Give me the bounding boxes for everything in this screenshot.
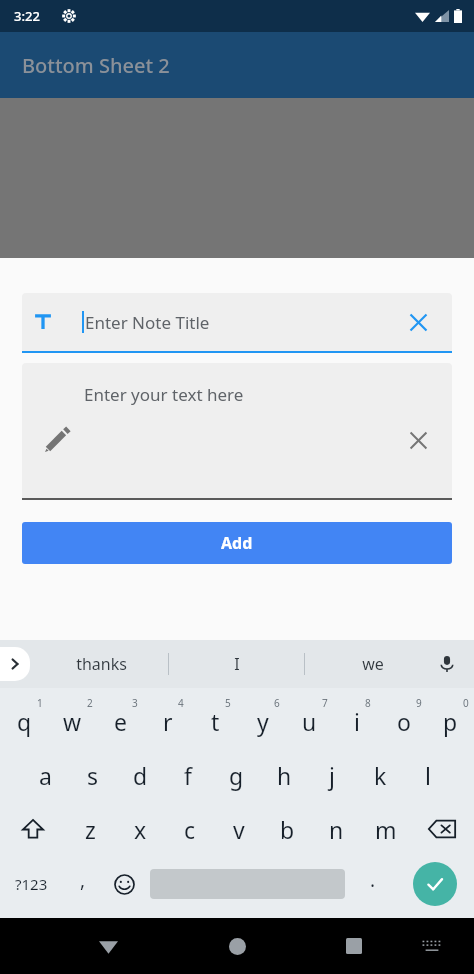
staticText: b <box>280 814 295 845</box>
button[interactable]: p <box>427 694 474 748</box>
button[interactable]: ?123 <box>0 856 63 912</box>
button[interactable]: j <box>308 748 356 802</box>
button[interactable]: v <box>214 802 263 856</box>
button[interactable]: f <box>164 748 212 802</box>
staticText: p <box>443 706 458 737</box>
button[interactable]: k <box>356 748 404 802</box>
staticText: r <box>163 706 173 737</box>
staticText: Add <box>221 532 253 554</box>
button[interactable]: r <box>144 694 192 748</box>
staticText: l <box>425 760 431 791</box>
staticText: 6 <box>274 696 280 710</box>
button[interactable]: b <box>263 802 312 856</box>
button[interactable]: q <box>0 694 48 748</box>
staticText: thanks <box>76 653 127 675</box>
staticText: c <box>184 814 196 845</box>
staticText: Enter your text here <box>84 383 244 406</box>
button[interactable]: Enter Note Title <box>22 293 452 353</box>
button[interactable]: n <box>312 802 361 856</box>
button[interactable]: o <box>380 694 427 748</box>
staticText: z <box>85 814 96 845</box>
staticText: 7 <box>322 696 328 710</box>
button[interactable]: i <box>333 694 380 748</box>
button[interactable]: s <box>69 748 116 802</box>
staticText: Enter Note Title <box>85 311 210 334</box>
button[interactable]: , <box>63 856 102 912</box>
staticText: g <box>229 760 244 791</box>
button[interactable]: x <box>115 802 165 856</box>
button[interactable]: Clear text <box>403 425 433 455</box>
staticText: . <box>370 867 376 893</box>
button[interactable]: Enter your text here <box>22 363 452 500</box>
button[interactable]: y <box>239 694 286 748</box>
button[interactable]: c <box>165 802 214 856</box>
staticText: a <box>39 760 52 791</box>
button[interactable]: w <box>48 694 96 748</box>
button[interactable]: . <box>349 856 396 912</box>
staticText: I <box>234 653 240 675</box>
staticText: ?123 <box>15 874 48 894</box>
staticText: y <box>257 706 269 737</box>
button[interactable]: a <box>22 748 69 802</box>
button[interactable]: z <box>65 802 115 856</box>
button[interactable]: t <box>192 694 239 748</box>
button[interactable]: Enter <box>413 862 457 906</box>
staticText: 9 <box>416 696 422 710</box>
button[interactable]: g <box>212 748 260 802</box>
button[interactable]: Emoji <box>102 856 146 912</box>
staticText: i <box>354 706 360 737</box>
button[interactable]: u <box>286 694 333 748</box>
button[interactable]: thanks <box>34 640 168 688</box>
button[interactable]: Backspace <box>410 802 474 856</box>
staticText: x <box>134 814 147 845</box>
staticText: Bottom Sheet 2 <box>22 52 170 79</box>
staticText: s <box>87 760 99 791</box>
staticText: u <box>302 706 317 737</box>
staticText: 0 <box>463 696 469 710</box>
staticText: o <box>397 706 411 737</box>
staticText: j <box>329 760 335 791</box>
button[interactable]: More suggestions <box>0 647 30 681</box>
button[interactable]: we <box>305 640 440 688</box>
staticText: m <box>375 814 397 845</box>
staticText: 2 <box>87 696 93 710</box>
button[interactable]: Add <box>22 522 452 564</box>
button[interactable]: h <box>260 748 308 802</box>
staticText: 8 <box>365 696 371 710</box>
staticText: 1 <box>37 696 43 710</box>
button[interactable]: m <box>361 802 410 856</box>
staticText: , <box>80 867 86 893</box>
staticText: we <box>362 653 384 675</box>
staticText: 3 <box>132 696 138 710</box>
button[interactable]: Home <box>217 926 257 966</box>
button[interactable]: l <box>404 748 452 802</box>
button[interactable]: e <box>96 694 144 748</box>
staticText: f <box>184 760 192 791</box>
button[interactable]: Recents <box>334 926 374 966</box>
staticText: t <box>211 706 220 737</box>
button[interactable]: I <box>169 640 304 688</box>
staticText: h <box>277 760 292 791</box>
staticText: w <box>63 706 82 737</box>
button[interactable]: Clear title <box>403 307 433 337</box>
staticText: k <box>374 760 387 791</box>
staticText: q <box>17 706 32 737</box>
staticText: 5 <box>225 696 231 710</box>
staticText: n <box>329 814 344 845</box>
button[interactable]: Switch keyboard <box>414 928 450 964</box>
button[interactable]: Back <box>88 926 128 966</box>
staticText: d <box>133 760 148 791</box>
button[interactable]: Voice input <box>432 649 462 679</box>
button[interactable]: Shift <box>0 802 65 856</box>
staticText: 3:22 <box>14 7 40 25</box>
staticText: 4 <box>178 696 184 710</box>
staticText: e <box>114 706 127 737</box>
button[interactable]: d <box>116 748 164 802</box>
staticText: v <box>233 814 245 845</box>
